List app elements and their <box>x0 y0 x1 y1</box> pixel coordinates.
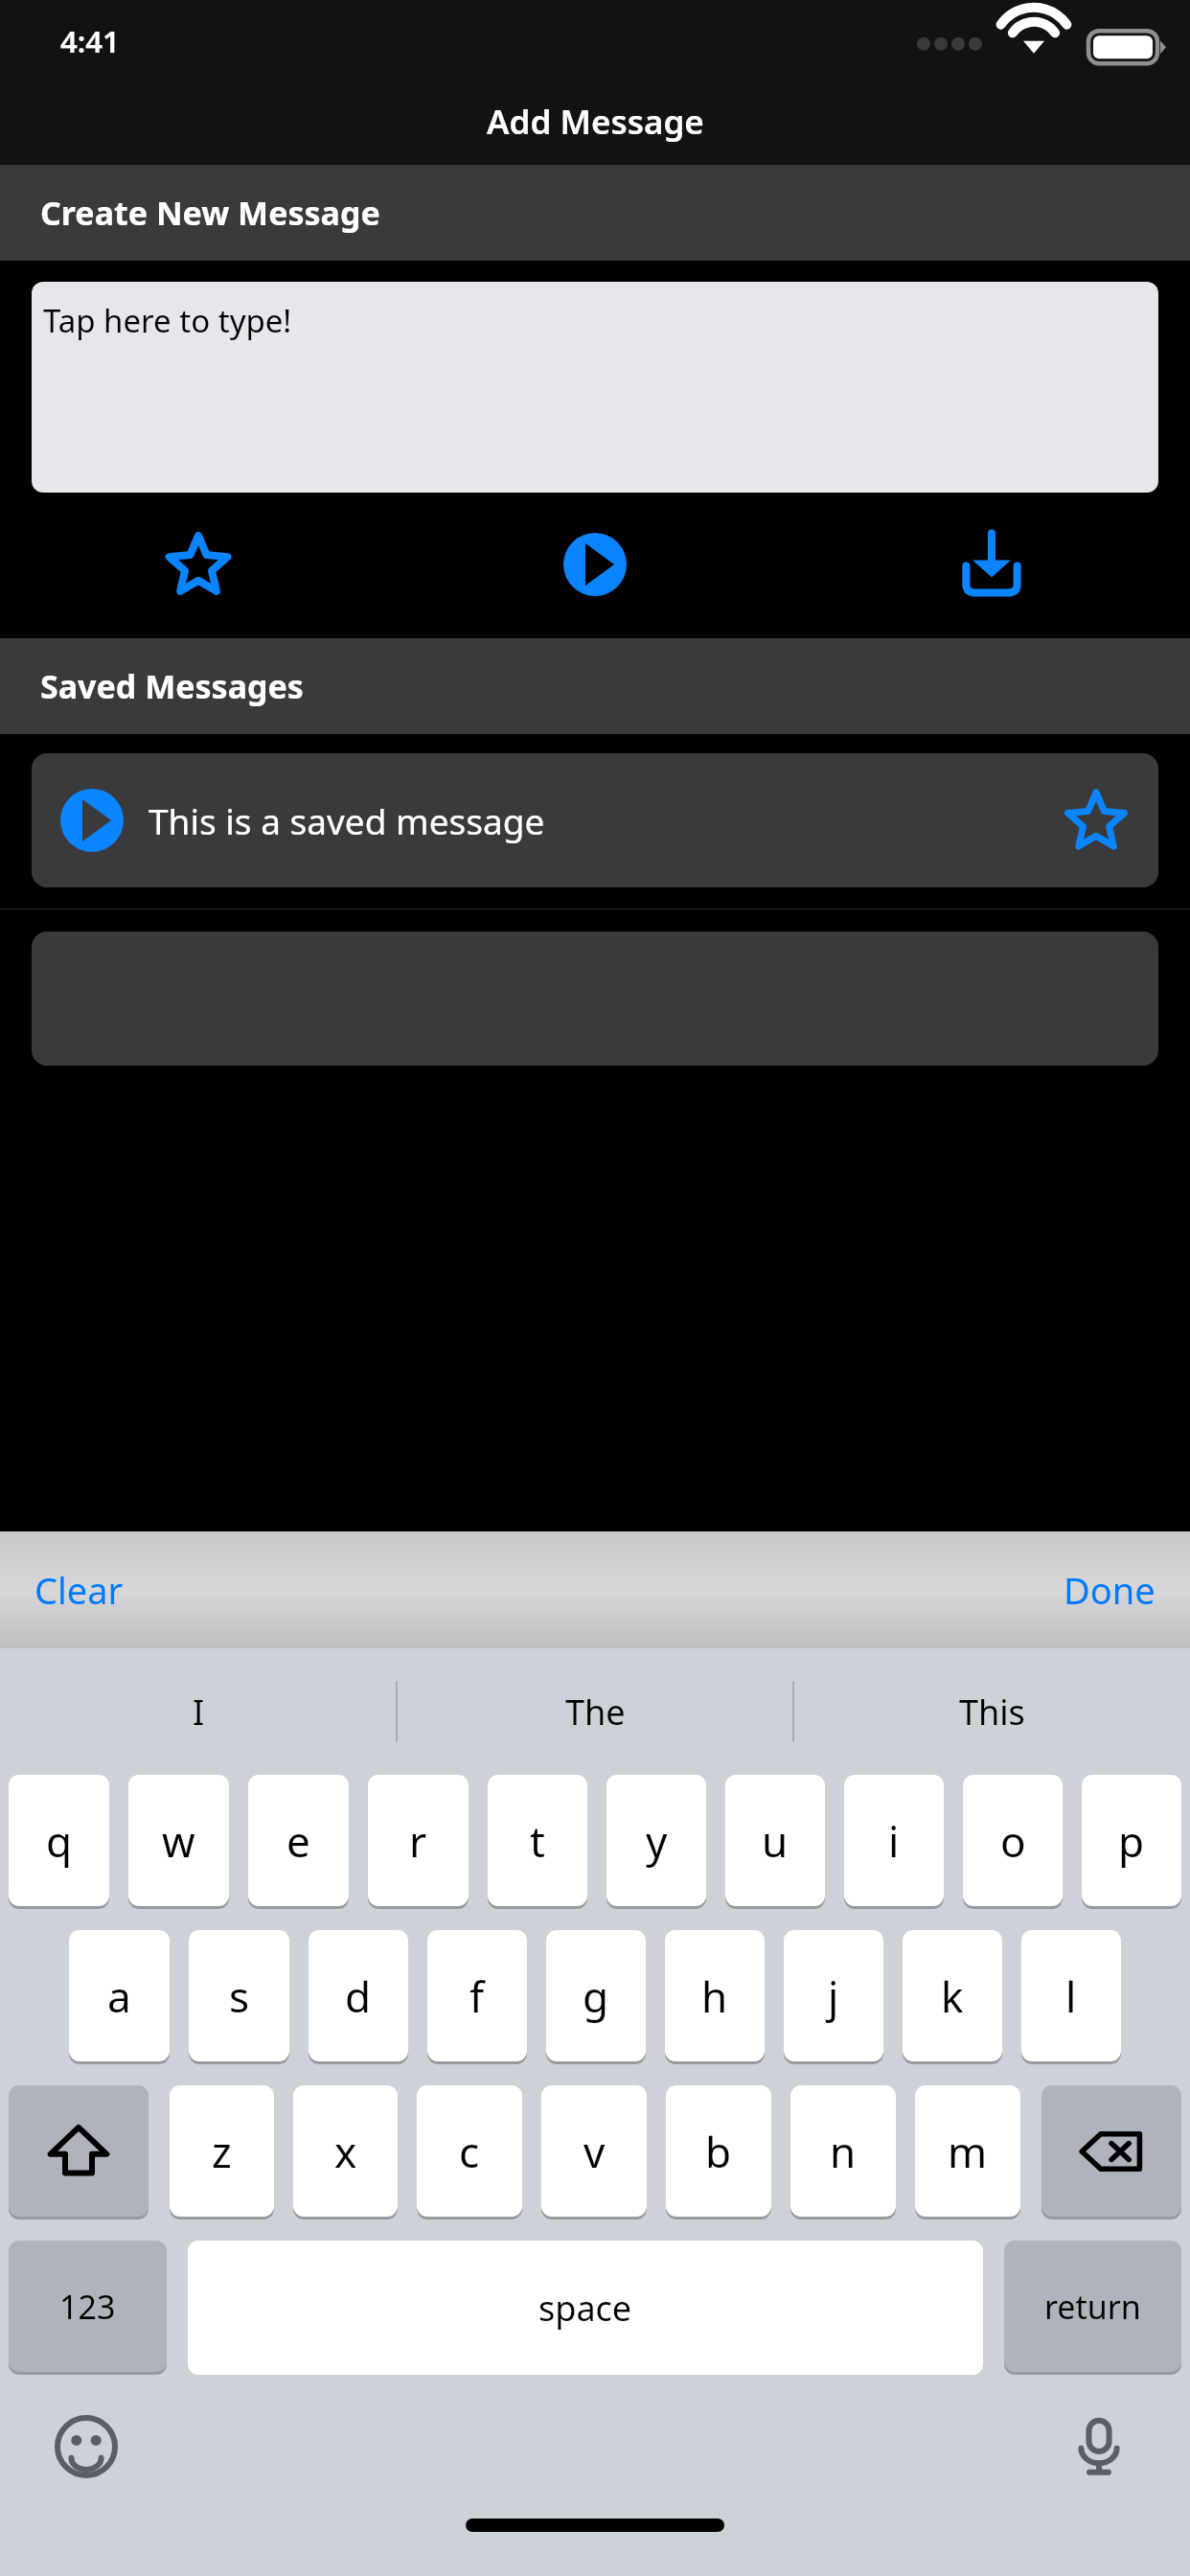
button[interactable]: p <box>1082 1775 1181 1906</box>
staticText: o <box>1000 1812 1026 1870</box>
staticText: Tap here to type! <box>43 299 292 342</box>
button[interactable]: k <box>903 1930 1002 2061</box>
staticText: p <box>1118 1812 1145 1870</box>
staticText: Saved Messages <box>40 664 304 708</box>
button[interactable]: v <box>541 2085 647 2217</box>
staticText: Create New Message <box>40 191 380 235</box>
button[interactable]: Emoji <box>48 2408 125 2485</box>
button[interactable]: m <box>915 2085 1020 2217</box>
staticText: Add Message <box>487 99 704 145</box>
staticText: This is a saved message <box>149 796 1059 844</box>
staticText: u <box>762 1812 789 1870</box>
button[interactable]: space <box>188 2241 983 2375</box>
staticText: l <box>1065 1967 1077 2025</box>
staticText: This <box>959 1689 1025 1736</box>
button[interactable]: Favorite <box>1059 783 1133 858</box>
button[interactable]: Backspace <box>1041 2085 1181 2217</box>
button[interactable]: Save <box>793 512 1190 617</box>
button[interactable]: e <box>248 1775 349 1906</box>
button[interactable]: d <box>309 1930 408 2061</box>
button[interactable]: y <box>606 1775 706 1906</box>
button[interactable]: q <box>9 1775 109 1906</box>
button[interactable]: This is a saved message <box>32 753 1158 887</box>
button[interactable]: 123 <box>9 2241 167 2372</box>
button[interactable]: t <box>488 1775 587 1906</box>
button[interactable]: Dictation <box>1061 2408 1137 2485</box>
staticText: m <box>948 2123 988 2180</box>
staticText: y <box>646 1812 668 1870</box>
button[interactable]: Clear <box>17 1555 141 1624</box>
button[interactable]: g <box>546 1930 646 2061</box>
staticText: t <box>530 1812 545 1870</box>
staticText: b <box>705 2123 732 2180</box>
button[interactable]: f <box>427 1930 527 2061</box>
staticText: j <box>828 1967 839 2025</box>
staticText: w <box>162 1812 195 1870</box>
button[interactable]: This <box>793 1648 1190 1775</box>
button[interactable]: h <box>665 1930 765 2061</box>
button[interactable]: u <box>725 1775 825 1906</box>
button[interactable]: c <box>417 2085 522 2217</box>
button[interactable]: a <box>69 1930 170 2061</box>
staticText: d <box>345 1967 372 2025</box>
staticText: Done <box>1064 1565 1156 1615</box>
button[interactable]: Done <box>1046 1555 1173 1624</box>
button[interactable]: The <box>397 1648 793 1775</box>
button[interactable]: Tap here to type! <box>32 282 1158 493</box>
button[interactable]: I <box>0 1648 397 1775</box>
staticText: f <box>469 1967 485 2025</box>
staticText: v <box>584 2123 606 2180</box>
staticText: 123 <box>59 2285 116 2329</box>
button[interactable]: z <box>170 2085 274 2217</box>
button[interactable]: return <box>1004 2241 1181 2372</box>
staticText: s <box>229 1967 250 2025</box>
staticText: h <box>701 1967 728 2025</box>
staticText: 4:41 <box>60 21 120 61</box>
staticText: g <box>583 1967 609 2025</box>
button[interactable]: Favorite <box>0 512 397 617</box>
button[interactable]: i <box>844 1775 944 1906</box>
staticText: c <box>459 2123 480 2180</box>
button[interactable]: b <box>666 2085 771 2217</box>
staticText: return <box>1044 2285 1141 2329</box>
staticText: z <box>212 2123 232 2180</box>
staticText: The <box>565 1689 626 1736</box>
staticText: x <box>334 2123 357 2180</box>
staticText: I <box>193 1689 205 1736</box>
staticText: i <box>888 1812 900 1870</box>
staticText: space <box>538 2285 632 2332</box>
staticText: n <box>830 2123 857 2180</box>
staticText: q <box>46 1812 73 1870</box>
button[interactable]: j <box>784 1930 883 2061</box>
button[interactable]: Shift <box>9 2085 149 2217</box>
staticText: e <box>286 1812 310 1870</box>
button[interactable]: Play <box>397 512 793 617</box>
button[interactable]: r <box>368 1775 469 1906</box>
button[interactable]: w <box>128 1775 229 1906</box>
button[interactable]: x <box>293 2085 398 2217</box>
button[interactable]: s <box>189 1930 289 2061</box>
button[interactable]: n <box>790 2085 896 2217</box>
staticText: a <box>107 1967 131 2025</box>
staticText: k <box>941 1967 964 2025</box>
staticText: Clear <box>34 1565 124 1615</box>
staticText: r <box>409 1812 427 1870</box>
button[interactable]: l <box>1021 1930 1121 2061</box>
button[interactable]: o <box>963 1775 1063 1906</box>
